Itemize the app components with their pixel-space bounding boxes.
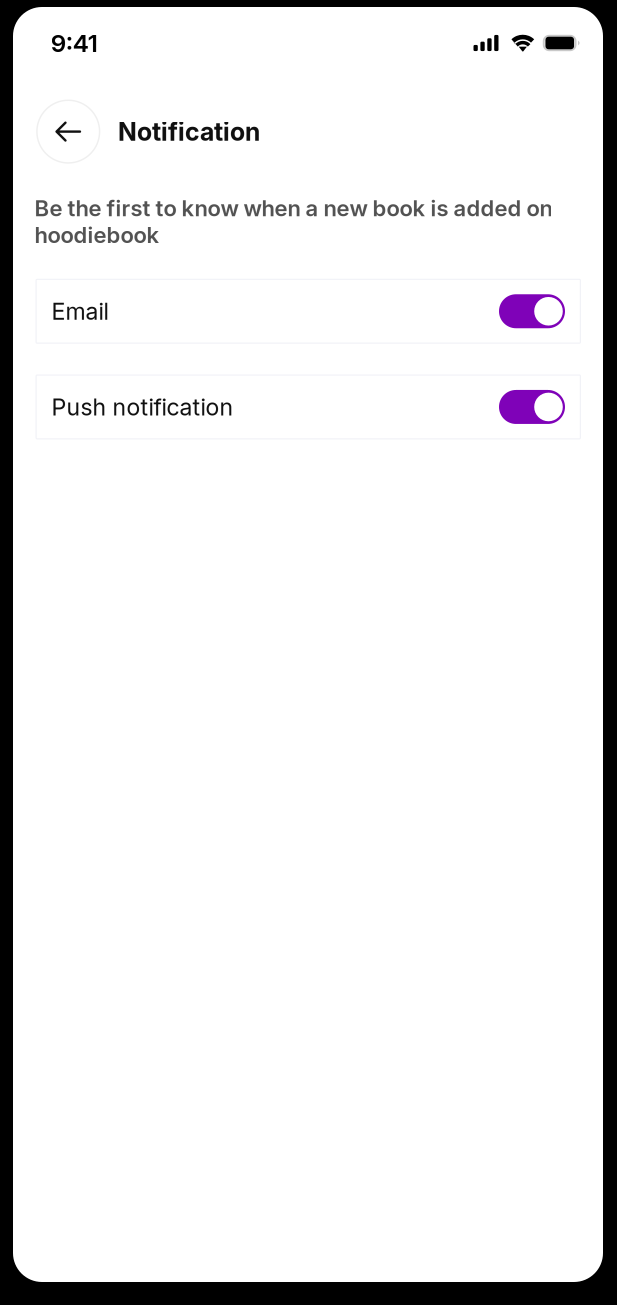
button[interactable]: Email (35, 279, 581, 344)
staticText: Email (51, 297, 108, 325)
staticText: 9:41 (51, 28, 98, 58)
button[interactable]: Back (36, 99, 101, 164)
staticText: Be the first to know when a new book is … (34, 195, 552, 248)
staticText: Notification (118, 116, 260, 147)
staticText: Push notification (51, 393, 233, 421)
button[interactable]: Push notification (35, 374, 581, 439)
